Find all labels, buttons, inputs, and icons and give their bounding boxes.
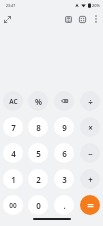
staticText: AC bbox=[9, 97, 18, 106]
button[interactable]: 1 bbox=[3, 169, 23, 189]
button[interactable]: 2 bbox=[28, 169, 48, 189]
staticText: 00 bbox=[9, 201, 17, 210]
button[interactable]: 7 bbox=[3, 117, 23, 137]
button[interactable]: Scientific calculator bbox=[61, 12, 75, 26]
button[interactable]: % bbox=[28, 91, 48, 111]
staticText: 8 bbox=[36, 122, 41, 133]
button[interactable]: . bbox=[54, 195, 74, 215]
button[interactable]: = bbox=[80, 195, 100, 215]
staticText: 23:47 bbox=[6, 3, 16, 8]
button[interactable]: 5 bbox=[28, 143, 48, 163]
staticText: 2 bbox=[36, 174, 41, 185]
button[interactable]: × bbox=[80, 117, 100, 137]
staticText: 0 bbox=[36, 200, 41, 211]
staticText: 20% bbox=[92, 3, 100, 8]
button[interactable]: 0 bbox=[28, 195, 48, 215]
staticText: % bbox=[35, 96, 42, 107]
staticText: + bbox=[88, 174, 93, 185]
staticText: 6 bbox=[62, 148, 67, 159]
button[interactable]: AC bbox=[3, 91, 23, 111]
button[interactable]: 4 bbox=[3, 143, 23, 163]
button[interactable]: + bbox=[80, 169, 100, 189]
staticText: 9 bbox=[62, 122, 67, 133]
staticText: 7 bbox=[11, 122, 16, 133]
staticText: − bbox=[88, 148, 93, 159]
button[interactable]: − bbox=[80, 143, 100, 163]
button[interactable]: 00 bbox=[3, 195, 23, 215]
staticText: 3 bbox=[62, 174, 67, 185]
button[interactable]: 6 bbox=[54, 143, 74, 163]
button[interactable]: Backspace bbox=[54, 91, 74, 111]
button[interactable]: Unit converter bbox=[75, 12, 89, 26]
button[interactable]: 3 bbox=[54, 169, 74, 189]
button[interactable]: 9 bbox=[54, 117, 74, 137]
staticText: . bbox=[63, 200, 66, 211]
staticText: 4 bbox=[11, 148, 16, 159]
button[interactable]: 8 bbox=[28, 117, 48, 137]
button[interactable]: ÷ bbox=[80, 91, 100, 111]
button[interactable]: Expand bbox=[0, 12, 15, 27]
staticText: × bbox=[88, 122, 93, 133]
staticText: 1 bbox=[11, 174, 16, 185]
staticText: ÷ bbox=[88, 96, 93, 107]
button[interactable]: More options bbox=[89, 12, 103, 26]
staticText: 5 bbox=[36, 148, 41, 159]
